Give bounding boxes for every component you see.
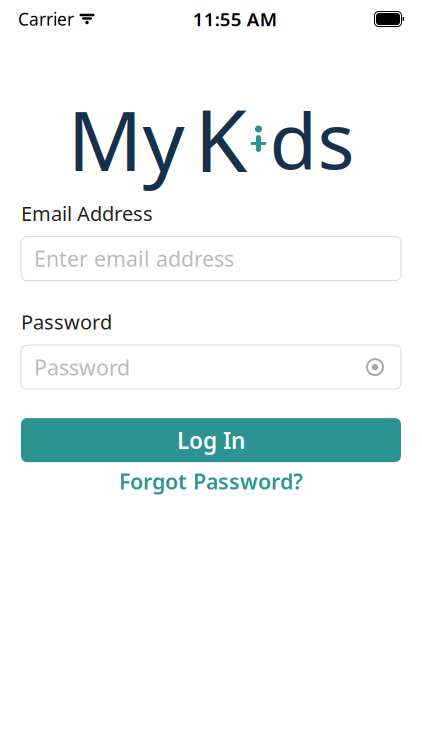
staticText: Email Address: [21, 200, 153, 227]
staticText: K: [194, 81, 247, 197]
button[interactable]: Show password: [362, 354, 388, 380]
staticText: Password: [21, 309, 112, 335]
staticText: Forgot Password?: [119, 467, 303, 495]
staticText: Enter email address: [34, 244, 234, 273]
staticText: Password: [34, 353, 130, 381]
button[interactable]: Log In: [21, 418, 401, 462]
button[interactable]: Enter email address: [21, 237, 401, 281]
staticText: Log In: [177, 425, 245, 455]
staticText: ds: [269, 86, 354, 192]
button[interactable]: Password: [21, 345, 401, 389]
button[interactable]: Forgot Password?: [21, 464, 401, 498]
staticText: My: [67, 83, 184, 195]
staticText: 11:55 AM: [193, 7, 277, 31]
staticText: Carrier: [18, 7, 74, 30]
